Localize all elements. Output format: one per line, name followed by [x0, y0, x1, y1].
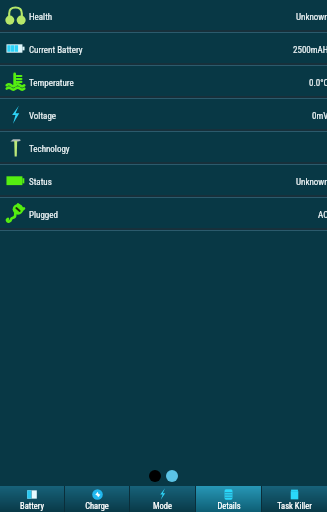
staticText: Battery	[20, 501, 44, 511]
staticText: 2500mAH	[293, 45, 327, 56]
staticText: Mode	[153, 501, 172, 511]
button[interactable]: Plugged	[0, 198, 327, 228]
button[interactable]: Technology	[0, 132, 327, 162]
staticText: AC	[318, 210, 327, 221]
staticText: Health	[29, 12, 53, 23]
staticText: Task Killer	[277, 501, 312, 511]
button[interactable]: Battery	[0, 486, 64, 512]
button[interactable]: Temperature	[0, 66, 327, 96]
button[interactable]: Health	[0, 0, 327, 30]
button[interactable]: Current Battery	[0, 33, 327, 63]
button[interactable]: Details	[196, 486, 261, 512]
staticText: Plugged	[29, 210, 58, 221]
staticText: 0.0°C	[309, 78, 327, 89]
staticText: Current Battery	[29, 45, 83, 56]
staticText: Unknown	[296, 12, 327, 23]
staticText: 0mV	[312, 111, 327, 122]
button[interactable]: Mode	[130, 486, 195, 512]
staticText: Voltage	[29, 111, 57, 122]
button[interactable]: Page 1	[149, 470, 161, 482]
button[interactable]: Charge	[65, 486, 129, 512]
button[interactable]: Task Killer	[262, 486, 327, 512]
staticText: Temperature	[29, 78, 74, 89]
button[interactable]: Page 2	[166, 470, 178, 482]
staticText: Details	[217, 501, 241, 511]
staticText: Charge	[85, 501, 109, 511]
staticText: Unknown	[296, 177, 327, 188]
staticText: Status	[29, 177, 52, 188]
button[interactable]: Status	[0, 165, 327, 195]
staticText: Technology	[29, 144, 70, 155]
button[interactable]: Voltage	[0, 99, 327, 129]
